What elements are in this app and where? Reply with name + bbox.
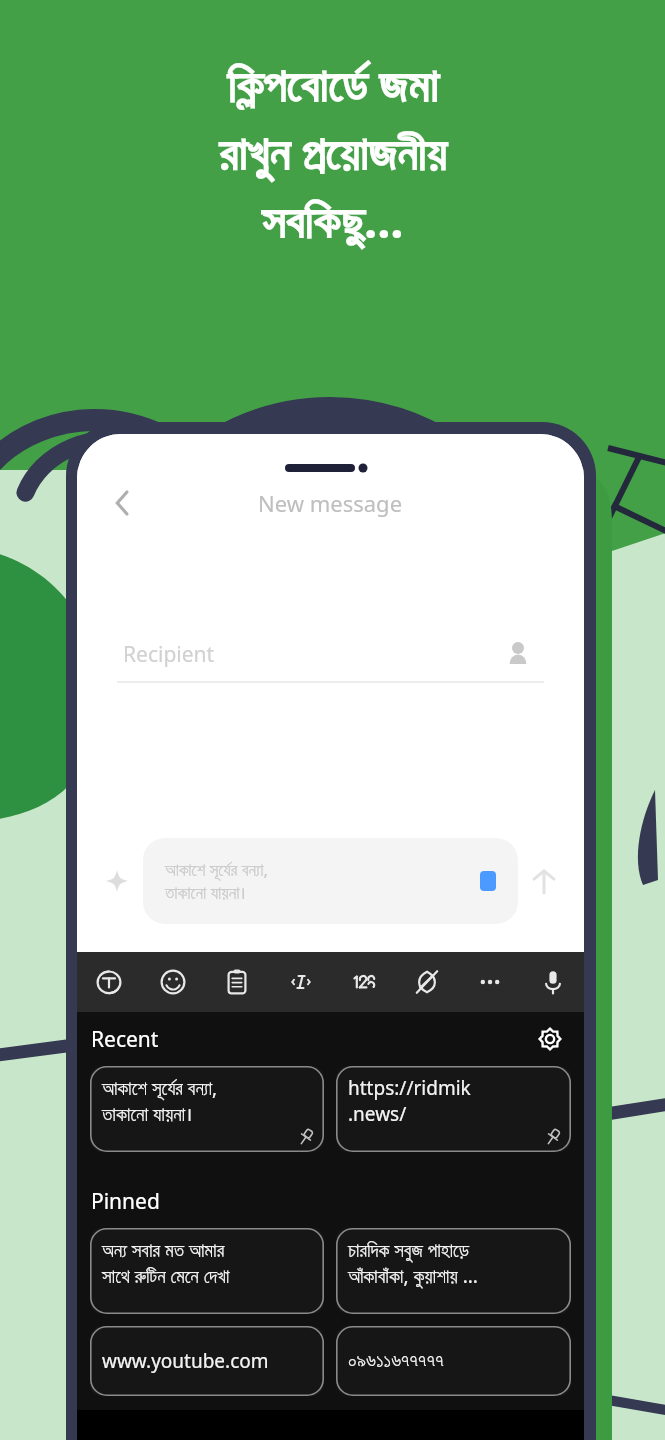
staticText: রাখুন প্রয়োজনীয় (219, 120, 446, 184)
button[interactable]: Translate (77, 952, 141, 1012)
button[interactable]: Handwriting off (395, 952, 458, 1012)
staticText: আকাশে সূর্যের বন্যা, (102, 1075, 218, 1101)
button[interactable]: Send (518, 855, 570, 907)
button[interactable]: আকাশে সূর্যের বন্যা, (143, 838, 518, 924)
button[interactable]: Clipboard (205, 952, 269, 1012)
staticText: অন্য সবার মত আমার (102, 1237, 225, 1263)
button[interactable]: Attach (91, 855, 143, 907)
button[interactable]: Clipboard settings (530, 1019, 570, 1059)
button[interactable]: Voice input (521, 952, 584, 1012)
button[interactable]: https://ridmik (336, 1066, 571, 1152)
staticText: আকাশে সূর্যের বন্যা, (165, 858, 269, 881)
staticText: আঁকাবাঁকা, কুয়াশায় ... (348, 1263, 478, 1289)
button[interactable]: Add contact (498, 634, 538, 674)
button[interactable]: আকাশে সূর্যের বন্যা, (90, 1066, 324, 1152)
staticText: তাকানো যায়না। (165, 881, 246, 904)
staticText: চারদিক সবুজ পাহাড়ে (348, 1237, 469, 1263)
staticText: New message (258, 488, 403, 518)
staticText: সবকিছু... (261, 188, 404, 252)
button[interactable]: www.youtube.com (90, 1326, 324, 1396)
staticText: www.youtube.com (102, 1348, 269, 1374)
button[interactable]: ০৯৬১১৬৭৭৭৭৭ (336, 1326, 571, 1396)
staticText: Recent (91, 1025, 159, 1054)
staticText: ০৯৬১১৬৭৭৭৭৭ (348, 1352, 444, 1371)
button[interactable]: অন্য সবার মত আমার (90, 1228, 324, 1314)
staticText: Pinned (91, 1187, 160, 1216)
staticText: তাকানো যায়না। (102, 1101, 193, 1127)
button[interactable]: Emoji (141, 952, 205, 1012)
staticText: ক্লিপবোর্ডে জমা (227, 52, 438, 116)
button[interactable]: Numbers (332, 952, 395, 1012)
staticText: https://ridmik (348, 1075, 471, 1101)
button[interactable]: Back (103, 483, 143, 523)
staticText: .news/ (348, 1101, 407, 1127)
button[interactable]: Text edit (269, 952, 332, 1012)
staticText: সাথে রুটিন মেনে দেখা (102, 1263, 230, 1289)
button[interactable]: চারদিক সবুজ পাহাড়ে (336, 1228, 571, 1314)
button[interactable]: More (458, 952, 521, 1012)
staticText: Recipient (123, 640, 215, 669)
